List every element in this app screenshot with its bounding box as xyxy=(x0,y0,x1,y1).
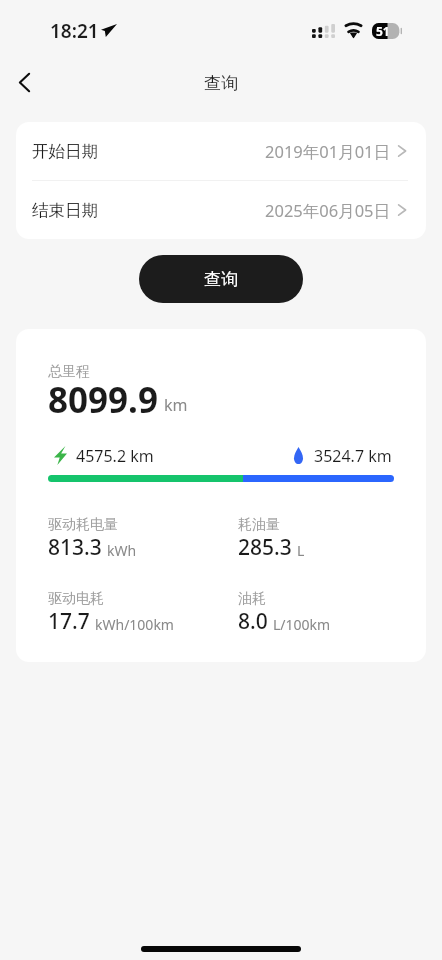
staticText: 17.7 xyxy=(48,607,90,636)
staticText: 结束日期 xyxy=(32,200,98,221)
staticText: 285.3 xyxy=(238,533,292,562)
staticText: 耗油量 xyxy=(238,516,280,534)
staticText: kWh/100km xyxy=(95,615,174,634)
staticText: 开始日期 xyxy=(32,141,98,162)
button[interactable]: Back xyxy=(2,60,46,104)
button[interactable]: 查询 xyxy=(139,255,303,303)
button[interactable]: 开始日期 xyxy=(16,122,426,180)
staticText: 油耗 xyxy=(238,590,266,608)
staticText: kWh xyxy=(107,541,137,560)
staticText: 4575.2 km xyxy=(76,445,154,465)
staticText: 2019年01月01日 xyxy=(265,140,391,163)
staticText: 查询 xyxy=(204,73,238,94)
button[interactable]: 结束日期 xyxy=(16,181,426,239)
staticText: 2025年06月05日 xyxy=(265,199,391,222)
staticText: 3524.7 km xyxy=(314,445,392,465)
staticText: 51 xyxy=(376,23,390,39)
staticText: L xyxy=(297,541,305,560)
staticText: 驱动电耗 xyxy=(48,590,104,608)
staticText: 8.0 xyxy=(238,607,268,636)
staticText: 813.3 xyxy=(48,533,102,562)
staticText: 18:21 xyxy=(50,18,99,44)
staticText: km xyxy=(164,394,188,416)
staticText: 总里程 xyxy=(48,363,90,381)
staticText: L/100km xyxy=(273,615,331,634)
staticText: 8099.9 xyxy=(48,376,158,424)
staticText: 查询 xyxy=(204,269,238,290)
staticText: 驱动耗电量 xyxy=(48,516,118,534)
